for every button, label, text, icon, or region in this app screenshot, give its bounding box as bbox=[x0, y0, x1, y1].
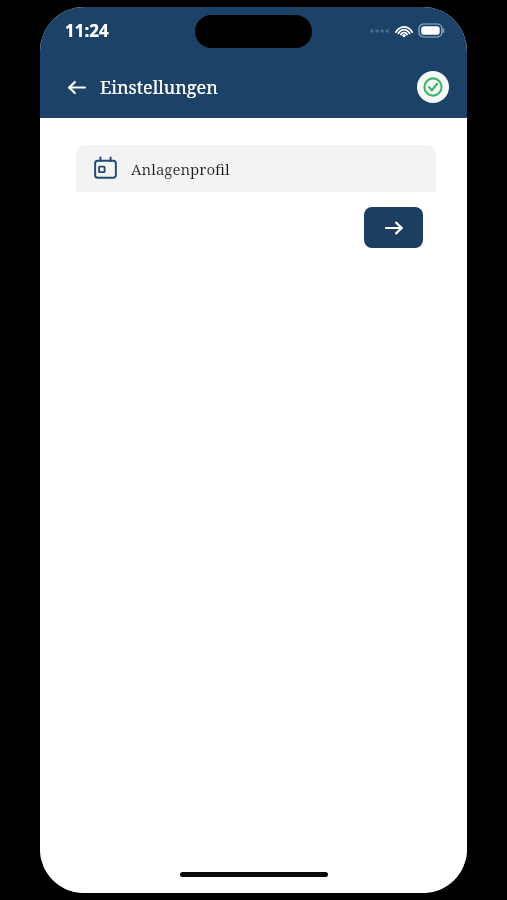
button[interactable]: Weiter bbox=[364, 207, 423, 248]
button[interactable]: Anlagenprofil bbox=[76, 145, 436, 192]
staticText: Einstellungen bbox=[100, 75, 218, 100]
staticText: Anlagenprofil bbox=[131, 159, 230, 179]
button[interactable]: Bestätigen bbox=[417, 71, 449, 103]
button[interactable]: Zurück bbox=[56, 67, 96, 107]
staticText: 11:24 bbox=[65, 19, 109, 42]
